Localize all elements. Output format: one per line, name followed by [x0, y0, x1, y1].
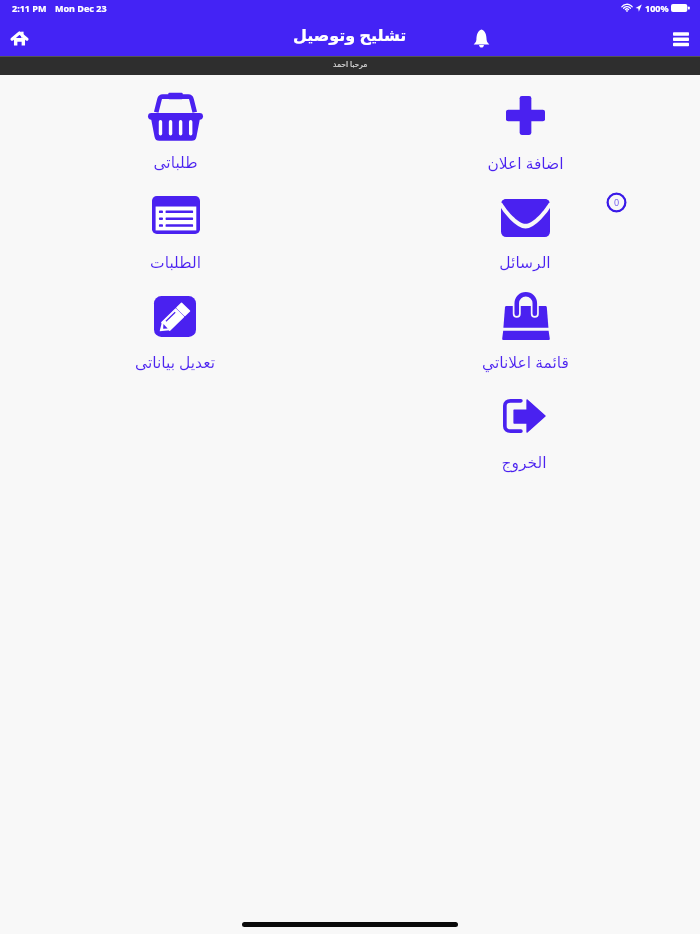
- staticText: 2:11 PM: [12, 2, 47, 14]
- staticText: تشليح وتوصيل: [293, 24, 407, 46]
- button[interactable]: قائمة اعلاناتي: [425, 278, 625, 377]
- button[interactable]: الطلبات: [75, 182, 275, 280]
- button[interactable]: Menu: [665, 23, 697, 55]
- button[interactable]: Unread count: [606, 192, 627, 213]
- button[interactable]: Home: [3, 22, 35, 54]
- staticText: 100%: [645, 2, 669, 14]
- button[interactable]: طلباتى: [75, 79, 275, 180]
- staticText: الرسائل: [499, 254, 551, 272]
- button[interactable]: Notifications: [465, 22, 498, 55]
- staticText: الطلبات: [150, 254, 201, 272]
- staticText: 0: [614, 196, 620, 208]
- staticText: طلباتى: [153, 154, 198, 172]
- staticText: مرحبا احمد: [333, 59, 368, 69]
- button[interactable]: اضافة اعلان: [425, 82, 625, 178]
- button[interactable]: الخروج: [424, 385, 624, 480]
- staticText: قائمة اعلاناتي: [482, 351, 569, 372]
- staticText: الخروج: [501, 454, 547, 472]
- staticText: تعديل بياناتى: [135, 351, 215, 372]
- button[interactable]: الرسائل: [425, 185, 625, 280]
- staticText: Mon Dec 23: [55, 2, 107, 14]
- staticText: اضافة اعلان: [487, 152, 564, 173]
- button[interactable]: تعديل بياناتى: [75, 282, 275, 377]
